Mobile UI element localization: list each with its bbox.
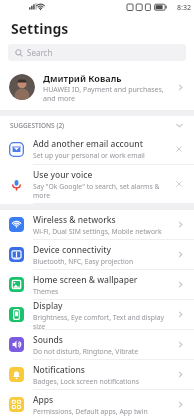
staticText: Add another email account (33, 138, 143, 150)
staticText: Themes (33, 287, 59, 296)
button[interactable]: Home screen & wallpaper (0, 270, 194, 299)
staticText: Device connectivity (33, 244, 112, 256)
button[interactable]: Dismiss Add another email account (173, 143, 185, 155)
staticText: Use your voice (33, 169, 93, 181)
staticText: HUAWEI ID, Payment and purchases, and mo… (43, 85, 172, 103)
button[interactable]: Wireless & networks (0, 210, 194, 239)
staticText: Bluetooth, NFC, Easy projection (33, 257, 134, 266)
staticText: Set up your personal or work email (33, 151, 145, 160)
staticText: Badges, Lock screen notifications (33, 377, 139, 386)
staticText: Brightness, Eye comfort, Text and displa… (33, 313, 172, 329)
staticText: Say "Ok Google" to search, set alarms & … (33, 182, 169, 200)
button[interactable]: Search (8, 44, 186, 61)
button[interactable]: Device connectivity (0, 240, 194, 269)
staticText: Do not disturb, Ringtone, Vibrate (33, 347, 139, 356)
staticText: Display (33, 300, 63, 312)
staticText: Дмитрий Коваль (43, 72, 122, 84)
staticText: Home screen & wallpaper (33, 274, 138, 286)
staticText: Wi-Fi, Dual SIM settings, Mobile network (33, 227, 162, 236)
button[interactable]: Use your voice (0, 165, 194, 203)
staticText: Apps (33, 394, 54, 406)
staticText: 8:32 (177, 3, 191, 13)
staticText: SUGGESTIONS (2) (10, 121, 175, 130)
staticText: Permissions, Default apps, App twin (33, 407, 148, 416)
button[interactable]: Дмитрий Коваль (0, 64, 194, 110)
button[interactable]: Notifications (0, 360, 194, 389)
button[interactable]: Add another email account (0, 134, 194, 164)
staticText: Settings (11, 19, 69, 38)
button[interactable]: Sounds (0, 330, 194, 359)
other: Collapse suggestions (175, 121, 184, 130)
button[interactable]: Dismiss Use your voice (173, 178, 185, 190)
staticText: Wireless & networks (33, 214, 116, 226)
button[interactable]: Display (0, 300, 194, 329)
staticText: Search (27, 47, 53, 58)
staticText: Sounds (33, 334, 63, 346)
staticText: Notifications (33, 364, 85, 376)
button[interactable]: SUGGESTIONS (2) (0, 116, 194, 134)
button[interactable]: Apps (0, 390, 194, 419)
